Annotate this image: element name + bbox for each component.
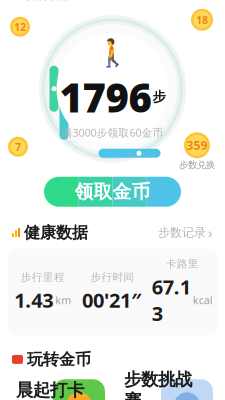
staticText: 步行里程 (21, 271, 65, 284)
staticText: 1796 (59, 70, 151, 123)
staticText: 359 (186, 137, 207, 153)
staticText: 12 (14, 20, 26, 34)
button[interactable]: 步数记录 (158, 223, 213, 242)
staticText: › (208, 223, 213, 242)
staticText: 玩转金币 (27, 350, 91, 369)
staticText: 领取金币 (74, 180, 150, 203)
staticText: 步数记录 (158, 225, 206, 240)
button[interactable]: 晨起打卡 (8, 375, 109, 400)
staticText: 7 (15, 140, 21, 154)
staticText: 1.43 (14, 287, 53, 313)
staticText: 00'21″ (82, 287, 141, 313)
button[interactable]: 359 (179, 132, 215, 171)
staticText: 🚶 (96, 38, 129, 68)
staticText: kcal (193, 293, 213, 307)
staticText: 健康数据 (24, 223, 88, 242)
staticText: 18 (196, 13, 208, 27)
staticText: 晨起打卡 (16, 379, 84, 400)
staticText: km (55, 293, 71, 307)
staticText: 步数挑战赛 (124, 369, 192, 400)
button[interactable]: 领取金币 (44, 177, 181, 207)
staticText: 67.13 (152, 273, 191, 327)
staticText: 步数兑换 (179, 159, 215, 171)
staticText: 步 (152, 89, 165, 105)
button[interactable]: 步数挑战赛 (116, 375, 217, 400)
button[interactable]: ¥ (12, 0, 87, 3)
staticText: 满3000步领取60金币 (61, 125, 163, 140)
staticText: 如何赚钱 (27, 0, 87, 3)
staticText: 卡路里 (166, 257, 199, 270)
staticText: 步行时间 (90, 271, 134, 284)
